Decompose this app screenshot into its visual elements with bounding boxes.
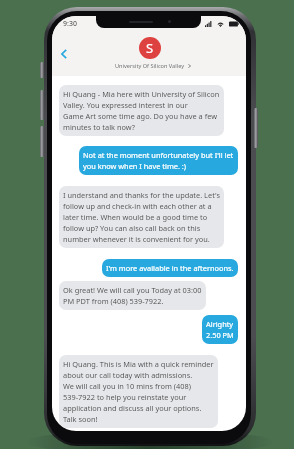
button[interactable]: Alrighty 2.50 PM (202, 315, 238, 344)
button[interactable]: University Of Silicon Valley (115, 62, 185, 70)
staticText: Hi Quang. This is Mia with a quick remin… (63, 359, 214, 424)
staticText: 9:30 (63, 19, 77, 29)
staticText: Alrighty 2.50 PM (206, 319, 234, 340)
button[interactable]: Back (55, 45, 73, 63)
button[interactable]: Ok great! We will call you Today at 03:0… (59, 281, 206, 310)
button[interactable]: Hi Quang. This is Mia with a quick remin… (59, 355, 218, 428)
button[interactable]: I understand and thanks for the update. … (59, 186, 224, 248)
staticText: I'm more available in the afternoons. (106, 263, 234, 273)
staticText: Not at the moment unfortunately but I'll… (83, 150, 234, 171)
button[interactable]: Hi Quang - Mia here with University of S… (59, 85, 224, 136)
staticText: I understand and thanks for the update. … (63, 190, 220, 244)
button[interactable]: I'm more available in the afternoons. (102, 259, 238, 277)
button[interactable]: Not at the moment unfortunately but I'll… (79, 146, 238, 175)
staticText: Hi Quang - Mia here with University of S… (63, 89, 220, 132)
staticText: Ok great! We will call you Today at 03:0… (63, 285, 202, 306)
staticText: S (146, 39, 154, 57)
